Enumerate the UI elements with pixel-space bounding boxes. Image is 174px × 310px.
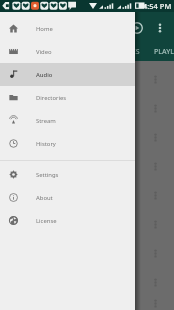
staticText: Directories (36, 94, 67, 102)
button[interactable]: Track options (0, 267, 174, 296)
button[interactable]: Home (0, 17, 135, 40)
button[interactable]: Track options (0, 64, 174, 93)
staticText: 4:54 PM (143, 1, 172, 11)
button[interactable]: Play all (125, 16, 149, 40)
button[interactable]: Track options (0, 209, 174, 238)
staticText: PLAYLISTS (154, 47, 174, 57)
button[interactable]: About (0, 186, 135, 209)
button[interactable]: History (0, 132, 135, 155)
staticText: Home (36, 25, 53, 33)
staticText: Stream (36, 117, 56, 125)
staticText: Settings (36, 171, 59, 179)
staticText: Audio (36, 71, 53, 79)
button[interactable]: Track options (0, 296, 174, 310)
button[interactable]: Track options (0, 93, 174, 122)
button[interactable]: Track options (0, 122, 174, 151)
button[interactable]: License (0, 209, 135, 232)
button[interactable]: PLAYLISTS (147, 43, 174, 61)
button[interactable]: Video (0, 40, 135, 63)
button[interactable]: Track options (0, 151, 174, 180)
button[interactable]: Audio (0, 63, 135, 86)
button[interactable]: Track options (0, 238, 174, 267)
button[interactable]: Settings (0, 163, 135, 186)
staticText: GENRES (113, 47, 140, 57)
button[interactable]: Track options (0, 180, 174, 209)
staticText: Video (36, 48, 52, 56)
button[interactable]: Directories (0, 86, 135, 109)
button[interactable]: GENRES (106, 43, 147, 61)
button[interactable]: More options (149, 17, 171, 39)
staticText: History (36, 140, 56, 148)
button[interactable]: Stream (0, 109, 135, 132)
staticText: License (36, 217, 57, 225)
staticText: About (36, 194, 53, 202)
